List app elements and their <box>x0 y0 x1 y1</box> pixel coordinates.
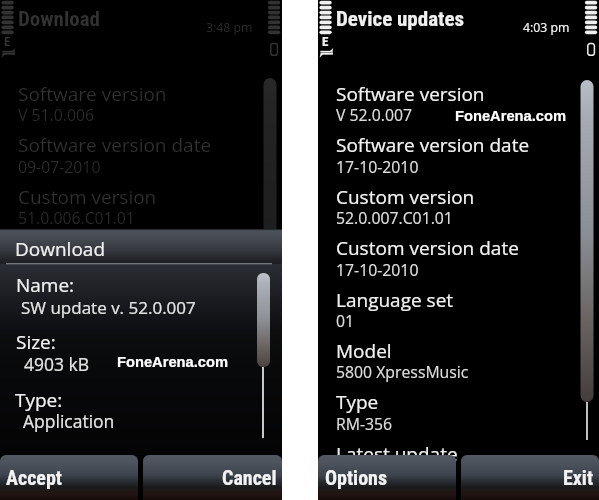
staticText: RM-356 <box>336 413 393 435</box>
staticText: Exit <box>563 466 594 489</box>
staticText: Options <box>325 466 388 489</box>
staticText: Type <box>336 389 379 415</box>
staticText: E <box>322 34 329 49</box>
staticText: Model <box>336 338 392 364</box>
button[interactable]: Cancel <box>143 455 282 500</box>
staticText: Accept <box>6 466 62 489</box>
staticText: Software version <box>18 81 167 107</box>
staticText: Language set <box>336 287 454 313</box>
staticText: Type: <box>15 387 63 413</box>
staticText: 52.0.007.C01.01 <box>336 207 453 229</box>
staticText: 17-10-2010 <box>336 156 419 178</box>
staticText: FoneArena.com <box>117 354 228 370</box>
button[interactable]: Exit <box>461 455 599 500</box>
button[interactable]: Accept <box>0 455 138 500</box>
staticText: 09-07-2010 <box>18 156 101 178</box>
staticText: Device updates <box>336 7 465 32</box>
staticText: Application <box>23 409 115 433</box>
staticText: Latest update <box>336 441 458 467</box>
staticText: Custom version date <box>336 235 519 261</box>
staticText: Size: <box>16 329 56 355</box>
staticText: 01 <box>336 310 355 332</box>
staticText: 09-07-2010 <box>18 259 101 281</box>
staticText: 4903 kB <box>24 352 90 376</box>
staticText: FoneArena.com <box>455 108 566 124</box>
staticText: E <box>4 34 11 49</box>
staticText: 4:03 pm <box>523 19 570 36</box>
staticText: Software version <box>336 81 485 107</box>
staticText: 3:48 pm <box>206 19 253 36</box>
staticText: Custom version date <box>18 235 201 261</box>
staticText: Name: <box>16 272 75 298</box>
staticText: Cancel <box>222 466 277 489</box>
staticText: Download <box>18 7 100 32</box>
staticText: Custom version <box>18 184 157 210</box>
staticText: 17-10-2010 <box>336 259 419 281</box>
staticText: Software version date <box>336 132 530 158</box>
staticText: Software version date <box>18 132 212 158</box>
staticText: 5800 XpressMusic <box>336 361 469 383</box>
staticText: 51.0.006.C01.01 <box>18 207 135 229</box>
staticText: SW update v. 52.0.007 <box>21 296 196 319</box>
button[interactable]: Options <box>318 455 456 500</box>
staticText: Download <box>15 236 105 262</box>
staticText: V 52.0.007 <box>336 104 413 126</box>
staticText: Custom version <box>336 184 475 210</box>
staticText: V 51.0.006 <box>18 104 95 126</box>
